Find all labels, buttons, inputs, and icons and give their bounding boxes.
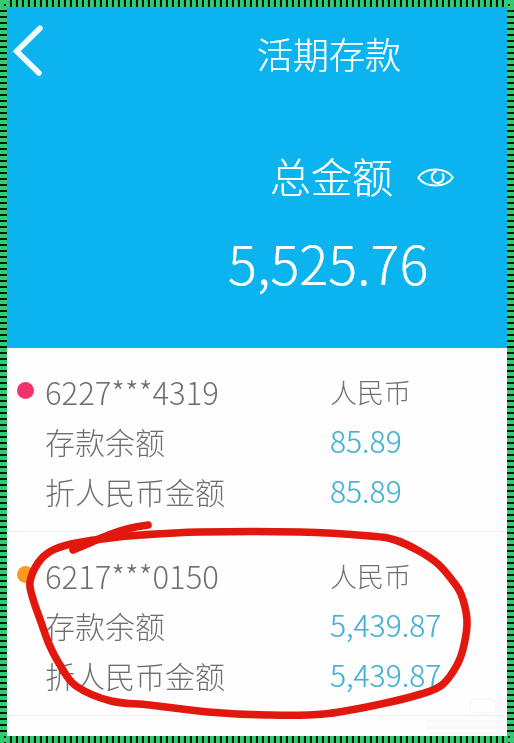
staticText: 85.89 (330, 468, 402, 511)
staticText: 折人民币金额 (45, 469, 225, 512)
button[interactable]: 6227***4319 (7, 348, 507, 531)
staticText: 6227***4319 (45, 369, 219, 414)
staticText: 活期存款 (257, 27, 402, 79)
staticText: 存款余额 (45, 419, 165, 462)
staticText: 总金额 (270, 145, 393, 204)
button[interactable]: Toggle amount visibility (417, 168, 454, 187)
staticText: 人民币 (330, 372, 411, 411)
staticText: 5,439.87 (330, 602, 442, 645)
staticText: 折人民币金额 (45, 653, 225, 696)
staticText: 存款余额 (45, 603, 165, 646)
staticText: 85.89 (330, 418, 402, 461)
staticText: 人民币 (330, 556, 411, 595)
staticText: 6217***0150 (45, 553, 219, 598)
staticText: 5,439.87 (330, 652, 442, 695)
button[interactable]: Back (9, 16, 53, 76)
button[interactable]: 6217***0150 (7, 532, 507, 715)
staticText: 5,525.76 (228, 222, 429, 300)
